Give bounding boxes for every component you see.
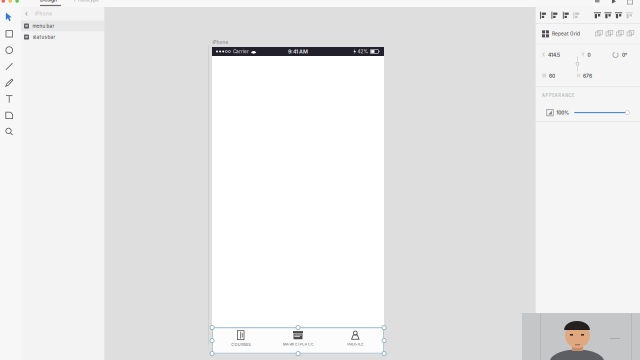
button[interactable]: Design xyxy=(40,0,61,7)
button[interactable]: Toggle panels xyxy=(627,0,633,4)
staticText: Prototype xyxy=(74,0,99,3)
button[interactable]: Repeat grid option xyxy=(627,30,634,37)
staticText: 9:41 AM xyxy=(288,48,308,55)
button[interactable]: COURSES xyxy=(212,328,269,353)
button[interactable]: Zoom xyxy=(0,123,18,140)
button[interactable]: Select xyxy=(0,9,18,26)
button[interactable]: Repeat Grid xyxy=(542,30,580,37)
button[interactable]: Align xyxy=(572,11,581,20)
staticText: 676 xyxy=(583,73,592,79)
button[interactable]: PROFILE xyxy=(327,328,384,353)
staticText: Y xyxy=(581,52,584,57)
staticText: PROFILE xyxy=(347,342,363,346)
staticText: Design xyxy=(40,0,57,3)
button[interactable]: Artboard xyxy=(0,107,18,123)
staticText: 60 xyxy=(549,73,555,79)
button[interactable]: Align xyxy=(561,11,570,20)
staticText: Carrier xyxy=(233,49,249,54)
staticText: iPhone xyxy=(212,39,228,45)
staticText: MARKETPLACE xyxy=(283,342,313,346)
button[interactable]: Align xyxy=(625,11,634,20)
staticText: 42% xyxy=(357,49,368,54)
staticText: COURSES xyxy=(231,342,250,347)
button[interactable]: Align xyxy=(593,11,602,20)
staticText: W xyxy=(542,73,546,78)
button[interactable]: menu bar xyxy=(21,20,105,31)
staticText: 414.5 xyxy=(548,52,560,58)
staticText: X xyxy=(542,52,545,57)
button[interactable]: Align xyxy=(614,11,623,20)
staticText: 100% xyxy=(556,110,569,116)
staticText: 0° xyxy=(622,52,627,58)
button[interactable]: Align xyxy=(550,11,559,20)
button[interactable]: Align xyxy=(603,11,612,20)
staticText: Repeat Grid xyxy=(552,31,580,37)
staticText: 0 xyxy=(587,52,590,58)
staticText: status bar xyxy=(32,34,55,40)
button[interactable]: status bar xyxy=(21,31,105,42)
button[interactable]: Repeat grid option xyxy=(606,30,613,37)
button[interactable]: MARKETPLACE xyxy=(269,328,327,353)
button[interactable]: Rectangle xyxy=(0,26,18,42)
staticText: menu bar xyxy=(32,23,54,29)
staticText: iPhone xyxy=(35,11,52,16)
button[interactable]: Preview xyxy=(612,0,616,3)
staticText: H xyxy=(577,73,580,78)
button[interactable]: Line xyxy=(0,58,18,75)
button[interactable]: Repeat grid option xyxy=(616,30,623,37)
button[interactable]: Ellipse xyxy=(0,42,18,58)
button[interactable]: Text xyxy=(0,91,18,107)
button[interactable]: Prototype xyxy=(74,0,102,7)
button[interactable]: Align xyxy=(538,11,547,20)
button[interactable]: Repeat grid option xyxy=(595,30,602,37)
button[interactable]: Pen xyxy=(0,75,18,91)
button[interactable]: Share xyxy=(595,0,599,2)
staticText: APPEARANCE xyxy=(542,93,574,98)
